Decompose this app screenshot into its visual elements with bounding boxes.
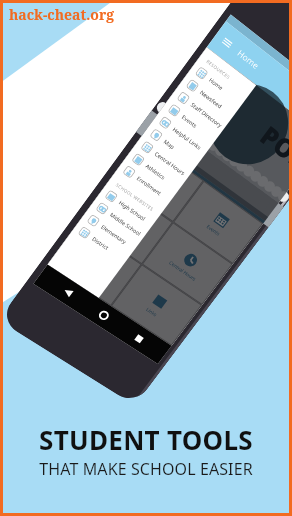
staticText: Central Hours — [167, 259, 197, 283]
staticText: Staff Directory — [190, 101, 224, 129]
button[interactable]: Links — [111, 264, 202, 346]
button[interactable]: Central Hours — [139, 138, 193, 182]
staticText: Links — [144, 306, 159, 319]
staticText: Helpful Links — [172, 125, 203, 151]
staticText: STUDENT TOOLS — [39, 422, 253, 457]
button[interactable]: Events — [166, 101, 220, 146]
staticText: Home — [235, 47, 262, 72]
button[interactable]: Home — [89, 301, 119, 330]
button[interactable]: Newsfeed — [110, 136, 204, 222]
staticText: Newsfeed — [199, 88, 224, 110]
button[interactable]: Back — [52, 277, 83, 307]
staticText: RESOURCES — [205, 58, 231, 80]
button[interactable]: Events — [173, 181, 263, 264]
staticText: High School — [118, 199, 147, 222]
button[interactable]: Home — [193, 63, 247, 110]
staticText: Middle School — [109, 211, 143, 237]
staticText: Events — [205, 223, 221, 238]
button[interactable]: District — [76, 223, 131, 266]
staticText: Home — [208, 76, 225, 91]
staticText: POR — [254, 117, 292, 177]
button[interactable]: High School — [103, 187, 157, 231]
staticText: Elementary — [100, 223, 128, 245]
button[interactable]: Recent apps — [124, 324, 154, 352]
staticText: THAT MAKE SCHOOL EASIER — [39, 458, 253, 480]
button[interactable]: Map — [47, 222, 142, 306]
button[interactable]: Helpful Links — [157, 113, 211, 158]
staticText: Newsfeed — [140, 178, 164, 197]
button[interactable]: Enrollment — [121, 162, 175, 207]
staticText: SCHOOL WEBSITES — [115, 182, 155, 212]
button[interactable]: Staff Directory — [175, 88, 229, 134]
staticText: Map — [162, 138, 176, 150]
button[interactable]: Newsfeed — [184, 76, 238, 122]
button[interactable]: Middle School — [94, 199, 149, 242]
staticText: Central Hours — [153, 150, 187, 176]
staticText: Enrollment — [136, 174, 163, 197]
staticText: Events — [181, 113, 198, 129]
staticText: District — [91, 235, 111, 251]
button[interactable]: Open navigation drawer — [207, 21, 292, 139]
button[interactable]: Elementary — [85, 211, 140, 254]
button[interactable]: Map — [148, 125, 202, 170]
button[interactable]: Staff — [79, 179, 173, 264]
button[interactable]: Athletics — [130, 150, 184, 194]
staticText: hack-cheat.org — [9, 5, 115, 24]
button[interactable]: Central Hours — [142, 222, 233, 305]
staticText: Athletics — [144, 162, 167, 181]
other: Open navigation drawer — [221, 36, 233, 49]
staticText: Staff — [114, 223, 128, 235]
